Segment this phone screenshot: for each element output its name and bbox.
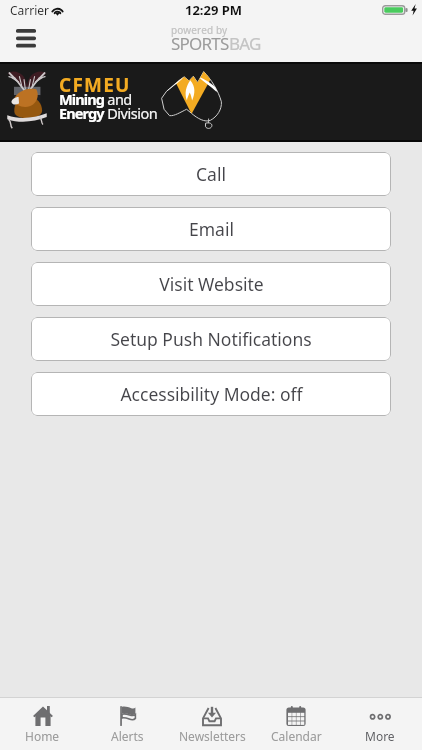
button[interactable]: Home bbox=[0, 698, 85, 750]
staticText: Visit Website bbox=[159, 272, 264, 296]
staticText: Mining bbox=[59, 89, 104, 109]
staticText: powered by bbox=[171, 23, 228, 37]
staticText: CFMEU bbox=[59, 72, 131, 98]
button[interactable]: Menu bbox=[6, 22, 45, 54]
staticText: More bbox=[365, 728, 395, 744]
button[interactable]: Alerts bbox=[85, 698, 170, 750]
staticText: BAG bbox=[229, 32, 261, 55]
button[interactable]: Visit Website bbox=[31, 262, 391, 306]
staticText: SPORTS bbox=[171, 32, 229, 55]
staticText: Home bbox=[25, 728, 60, 744]
staticText: Call bbox=[196, 162, 226, 186]
staticText: Calendar bbox=[271, 728, 322, 744]
staticText: and bbox=[104, 89, 132, 109]
button[interactable]: Newsletters bbox=[170, 698, 254, 750]
staticText: Alerts bbox=[111, 728, 144, 744]
button[interactable]: More bbox=[338, 698, 422, 750]
staticText: Setup Push Notifications bbox=[110, 327, 312, 351]
staticText: Newsletters bbox=[179, 728, 246, 744]
staticText: Carrier bbox=[10, 2, 50, 18]
staticText: 12:29 PM bbox=[185, 1, 243, 19]
staticText: Accessibility Mode: off bbox=[120, 382, 303, 406]
button[interactable]: Accessibility Mode: off bbox=[31, 372, 391, 416]
button[interactable]: Setup Push Notifications bbox=[31, 317, 391, 361]
button[interactable]: Calendar bbox=[254, 698, 338, 750]
staticText: Energy bbox=[59, 103, 104, 123]
button[interactable]: Call bbox=[31, 152, 391, 196]
staticText: Division bbox=[104, 103, 158, 123]
button[interactable]: Email bbox=[31, 207, 391, 251]
staticText: Email bbox=[189, 217, 234, 241]
